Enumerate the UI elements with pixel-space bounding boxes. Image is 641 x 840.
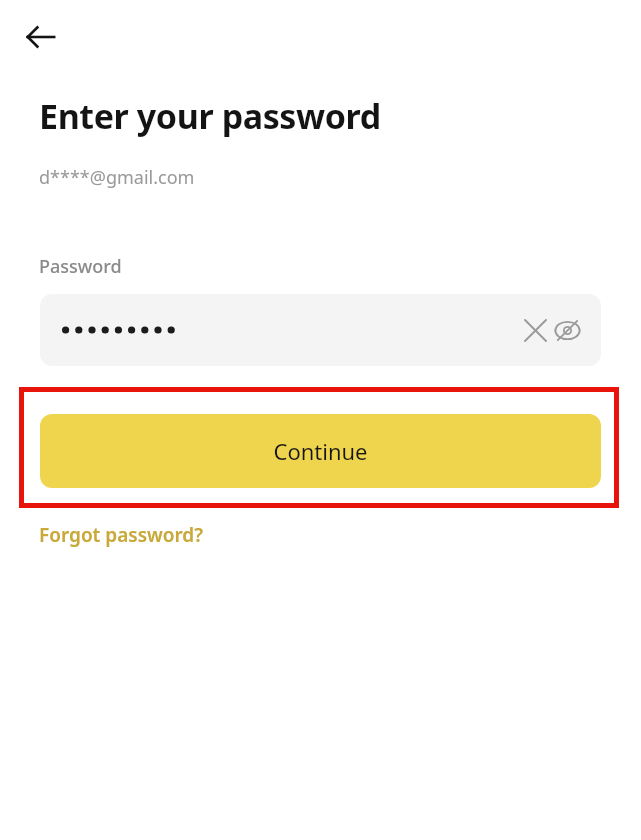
staticText: Password <box>39 254 122 279</box>
button[interactable]: Clear password <box>40 294 601 366</box>
button[interactable]: Show password <box>545 308 589 352</box>
button[interactable]: Forgot password? <box>39 522 204 548</box>
button[interactable]: Continue <box>40 414 601 488</box>
staticText: Continue <box>273 436 368 466</box>
staticText: d****@gmail.com <box>39 165 195 190</box>
button[interactable]: Back <box>17 13 65 61</box>
staticText: Enter your password <box>39 93 381 139</box>
staticText: Forgot password? <box>39 522 204 548</box>
button[interactable]: Clear password <box>514 309 556 351</box>
